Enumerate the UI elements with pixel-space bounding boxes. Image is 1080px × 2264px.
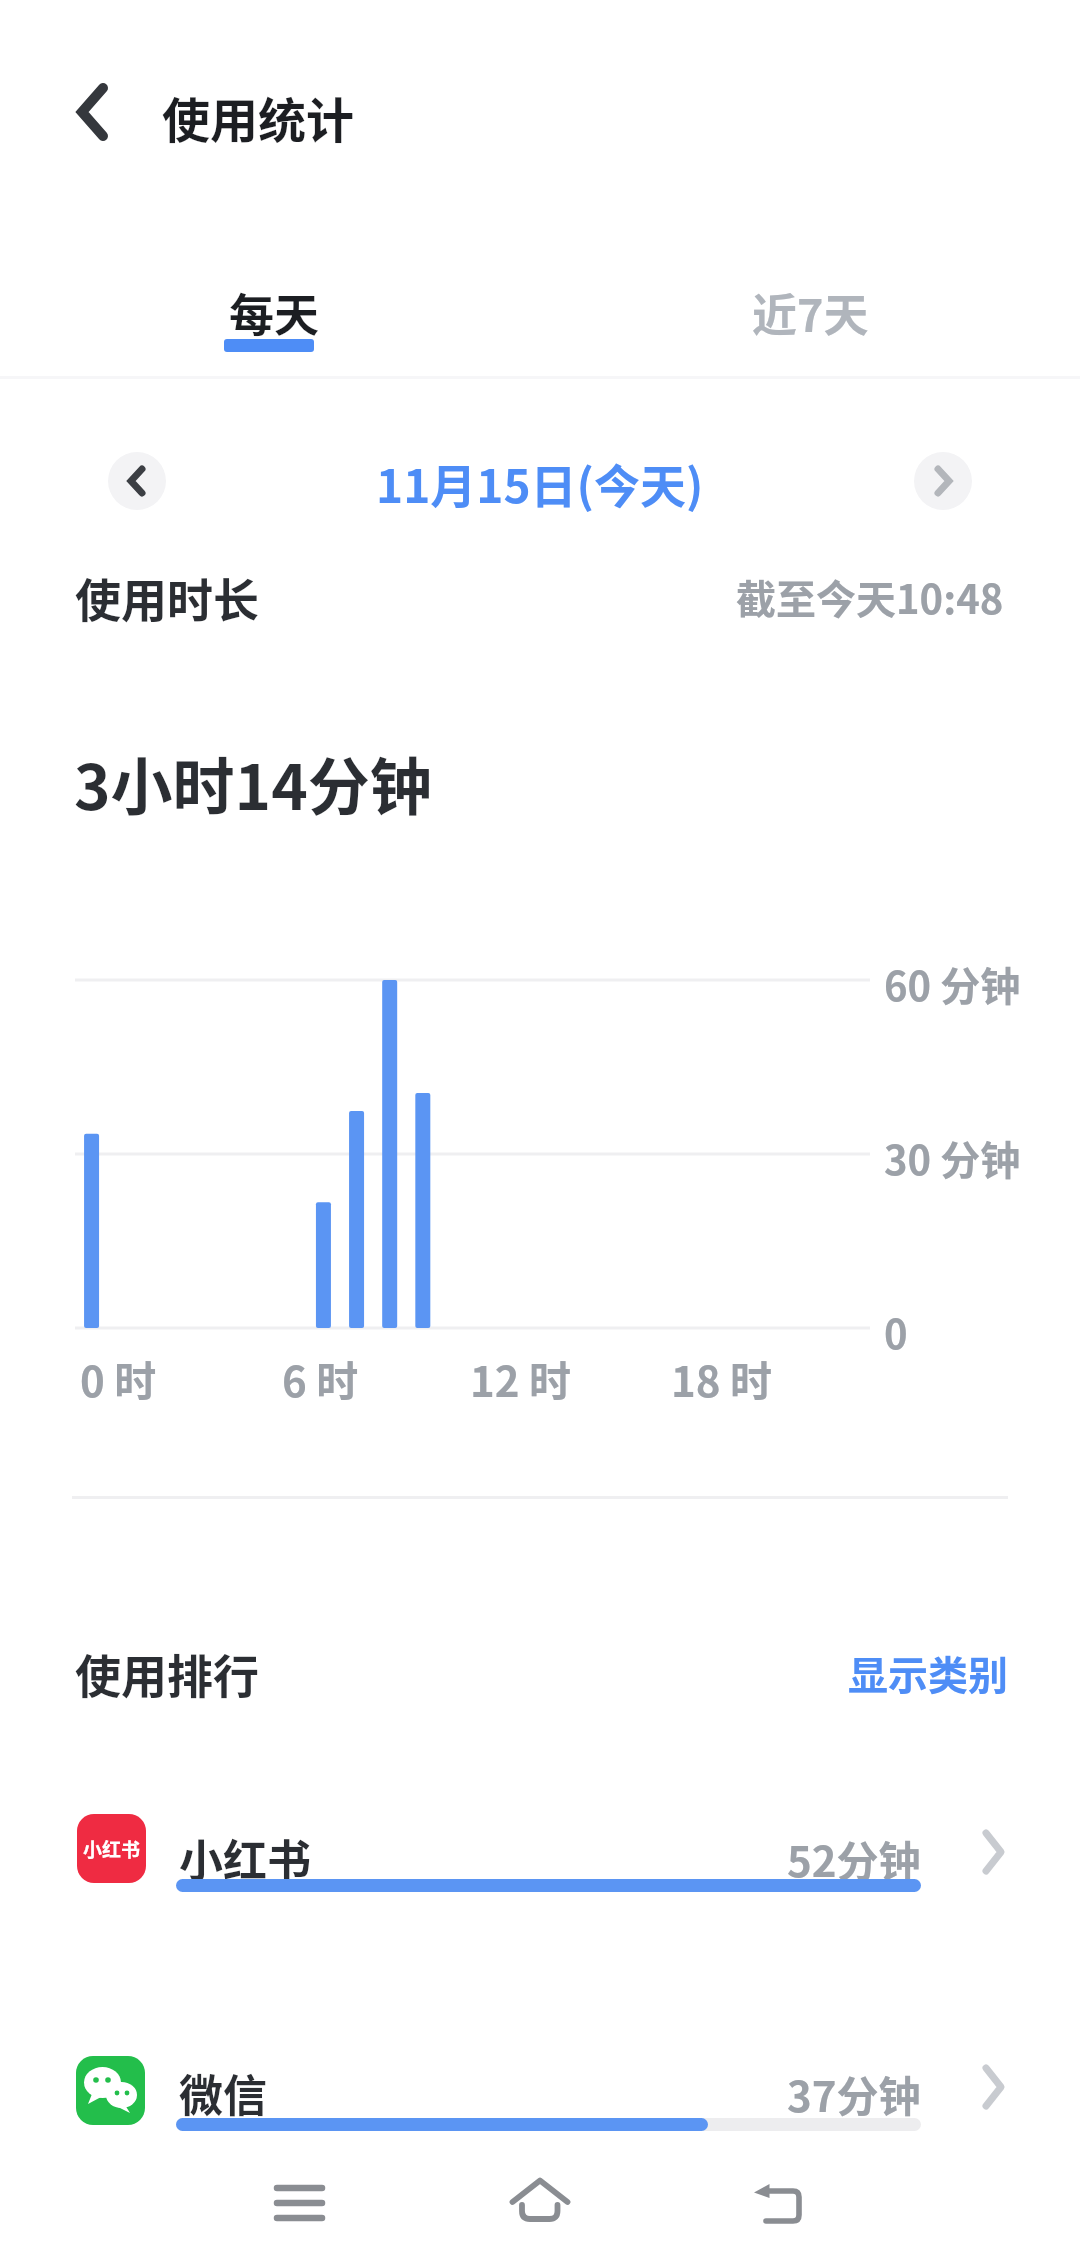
- staticText: 18 时: [671, 1348, 773, 1400]
- button[interactable]: [230, 2156, 370, 2250]
- button[interactable]: [914, 452, 972, 510]
- staticText: 使用排行: [75, 1640, 259, 1696]
- staticText: 每天: [229, 280, 320, 330]
- staticText: 小红书: [179, 1826, 311, 1876]
- staticText: 使用统计: [162, 82, 355, 142]
- staticText: 37分钟: [787, 2063, 921, 2111]
- staticText: 显示类别: [848, 1644, 1008, 1694]
- button[interactable]: [58, 76, 126, 148]
- staticText: 小红书: [83, 1835, 141, 1863]
- button[interactable]: 近7天: [730, 280, 890, 330]
- button[interactable]: [708, 2156, 848, 2250]
- button[interactable]: 每天: [190, 262, 350, 362]
- staticText: 微信: [179, 2061, 267, 2111]
- staticText: 截至今天10:48: [736, 568, 1004, 618]
- button[interactable]: [470, 2154, 610, 2248]
- button[interactable]: [108, 452, 166, 510]
- staticText: 使用时长: [75, 564, 259, 620]
- staticText: 12 时: [470, 1348, 572, 1400]
- staticText: 3小时14分钟: [74, 738, 432, 828]
- staticText: 52分钟: [787, 1828, 921, 1876]
- staticText: 6 时: [282, 1348, 359, 1400]
- button[interactable]: 显示类别: [830, 1644, 1008, 1694]
- staticText: 近7天: [752, 280, 869, 330]
- button[interactable]: 小红书: [60, 1794, 1020, 1906]
- staticText: 0 时: [80, 1348, 157, 1400]
- staticText: 11月15日(今天): [376, 450, 704, 510]
- staticText: 30 分钟: [884, 1129, 1021, 1179]
- button[interactable]: 微信: [60, 2034, 1020, 2146]
- staticText: 60 分钟: [884, 955, 1021, 1005]
- staticText: 0: [884, 1303, 908, 1353]
